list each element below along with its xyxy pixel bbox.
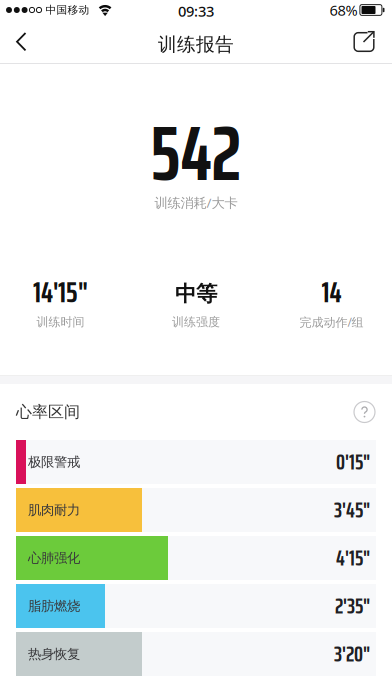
staticText: 训练强度	[172, 315, 220, 329]
staticText: 68%	[329, 0, 357, 20]
button[interactable]	[354, 401, 375, 422]
staticText: 2'35"	[335, 589, 370, 623]
staticText: 0'15"	[336, 445, 370, 479]
staticText: 09:33	[178, 1, 214, 21]
staticText: 3'20"	[334, 637, 370, 671]
staticText: 热身恢复	[28, 646, 80, 662]
staticText: 训练消耗/大卡	[154, 194, 237, 211]
staticText: 中等	[175, 281, 217, 307]
staticText: 4'15"	[336, 541, 370, 575]
staticText: 心肺强化	[28, 550, 80, 566]
button[interactable]	[344, 20, 392, 63]
staticText: 542	[150, 94, 241, 213]
staticText: 训练时间	[36, 315, 84, 329]
staticText: 3'45"	[334, 493, 370, 527]
staticText: 训练报告	[158, 33, 234, 56]
staticText: 14'15"	[33, 269, 88, 315]
staticText: 14	[321, 269, 341, 315]
staticText: 中国移动	[46, 3, 90, 16]
staticText: 脂肪燃烧	[28, 598, 80, 614]
staticText: 完成动作/组	[299, 314, 363, 330]
staticText: 心率区间	[16, 402, 80, 422]
staticText: 极限警戒	[28, 454, 80, 470]
button[interactable]	[0, 20, 44, 63]
staticText: 肌肉耐力	[28, 502, 80, 518]
